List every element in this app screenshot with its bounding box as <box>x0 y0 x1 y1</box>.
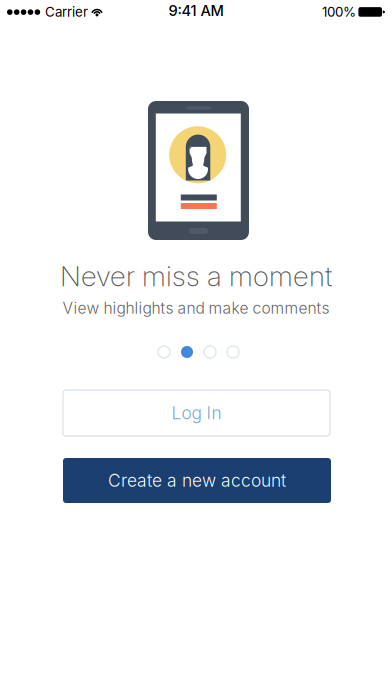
staticText: Create a new account <box>108 470 286 491</box>
staticText: Log In <box>171 402 221 423</box>
staticText: Never miss a moment <box>60 259 332 293</box>
staticText: 100% <box>322 4 356 20</box>
button[interactable]: Create a new account <box>63 458 331 503</box>
staticText: View highlights and make comments <box>62 299 329 317</box>
button[interactable]: Log In <box>63 390 330 436</box>
staticText: Carrier <box>45 4 88 20</box>
staticText: 9:41 AM <box>168 2 223 20</box>
